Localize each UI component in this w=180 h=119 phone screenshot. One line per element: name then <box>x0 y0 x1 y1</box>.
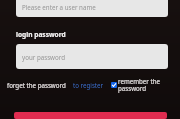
staticText: your password <box>22 53 65 61</box>
button[interactable]: Login <box>14 112 167 119</box>
button[interactable]: to register <box>73 80 104 90</box>
button[interactable]: Remember the password <box>111 76 173 94</box>
staticText: Please enter a user name <box>22 3 96 11</box>
button[interactable]: forget the password <box>7 80 66 90</box>
staticText: to register <box>73 81 104 89</box>
button[interactable]: Please enter a user name <box>16 0 168 17</box>
staticText: login password <box>16 30 66 39</box>
button[interactable]: your password <box>16 44 168 69</box>
other: Remember the password <box>111 82 117 88</box>
staticText: forget the password <box>7 81 66 89</box>
staticText: remember the password <box>118 77 173 93</box>
